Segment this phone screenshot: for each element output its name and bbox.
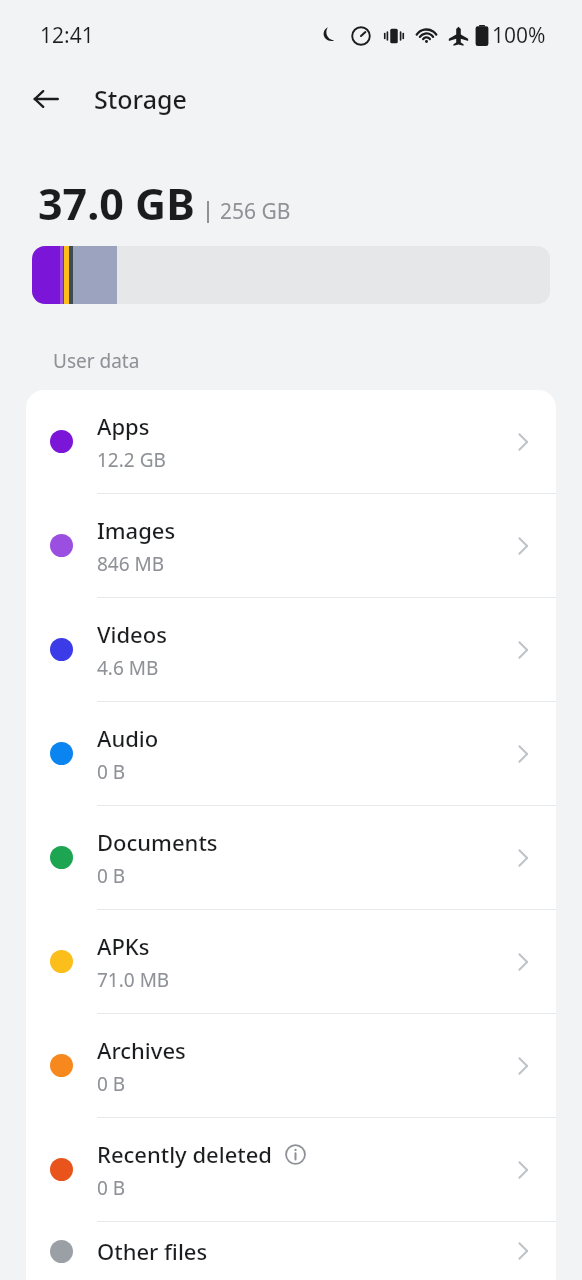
staticText: 0 B (97, 1175, 126, 1201)
staticText: 12:41 (40, 21, 94, 50)
button[interactable]: Documents (26, 806, 556, 909)
button[interactable]: Recently deleted (26, 1118, 556, 1221)
staticText: 71.0 MB (97, 967, 170, 993)
button[interactable]: Back (22, 75, 70, 123)
staticText: Videos (97, 619, 167, 649)
button[interactable]: Apps (26, 390, 556, 493)
staticText: 12.2 GB (97, 447, 166, 473)
staticText: Apps (97, 411, 150, 441)
button[interactable]: Images (26, 494, 556, 597)
button[interactable]: Info (282, 1141, 308, 1167)
staticText: APKs (97, 931, 150, 961)
staticText: Archives (97, 1035, 186, 1065)
button[interactable]: Other files (26, 1222, 556, 1280)
staticText: 37.0 GB (38, 174, 195, 233)
button[interactable]: Videos (26, 598, 556, 701)
staticText: Storage (94, 82, 187, 116)
staticText: 256 GB (220, 197, 291, 226)
staticText: Recently deleted (97, 1139, 272, 1169)
staticText: 0 B (97, 759, 126, 785)
button[interactable]: Audio (26, 702, 556, 805)
staticText: 0 B (97, 1071, 126, 1097)
staticText: Other files (97, 1236, 208, 1266)
staticText: 4.6 MB (97, 655, 159, 681)
staticText: Images (97, 515, 176, 545)
staticText: User data (53, 348, 140, 374)
staticText: 846 MB (97, 551, 165, 577)
button[interactable]: APKs (26, 910, 556, 1013)
button[interactable]: Archives (26, 1014, 556, 1117)
staticText: Documents (97, 827, 218, 857)
staticText: 100% (492, 21, 546, 50)
staticText: 0 B (97, 863, 126, 889)
staticText: Audio (97, 723, 159, 753)
